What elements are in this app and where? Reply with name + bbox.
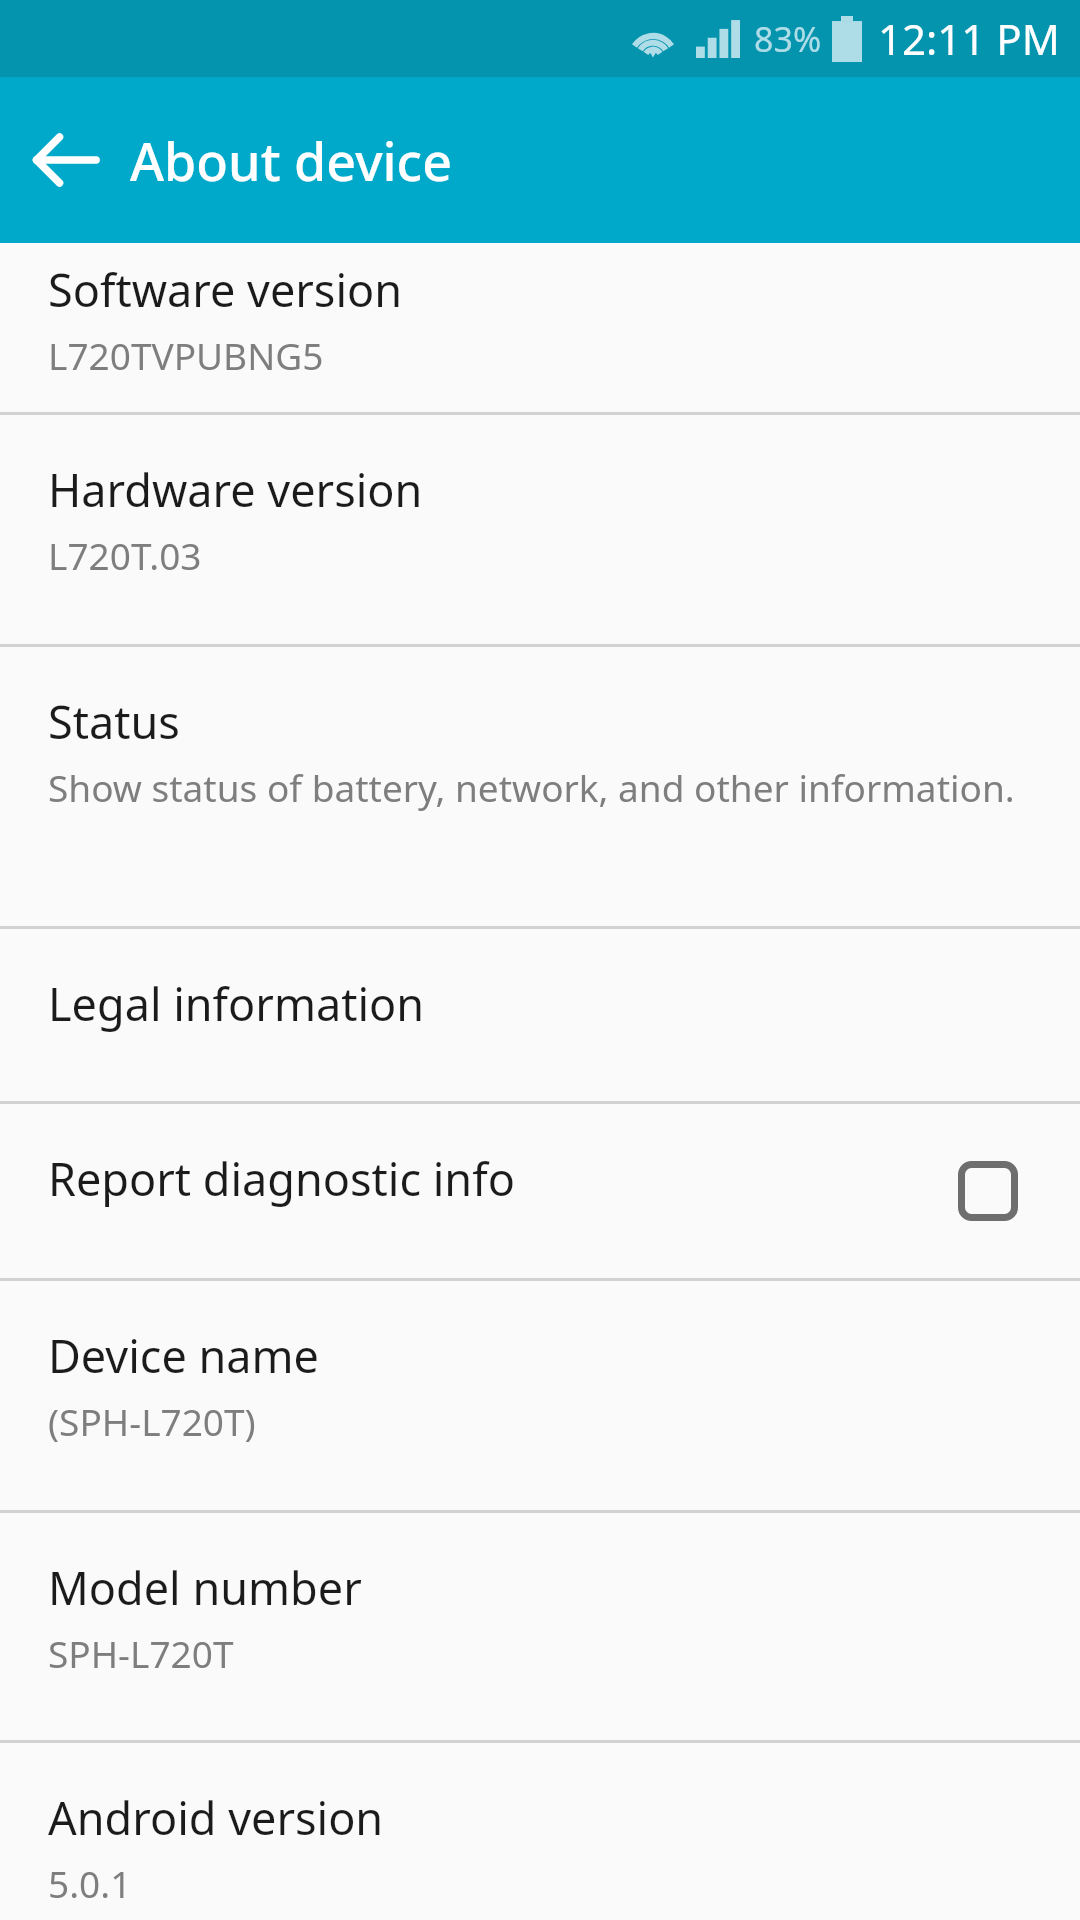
staticText: 5.0.1 [48,1858,132,1908]
staticText: SPH-L720T [48,1628,234,1678]
button[interactable]: Report diagnostic info checkbox [895,1104,1080,1278]
button[interactable]: Hardware version [0,415,1080,644]
button[interactable]: Report diagnostic info [0,1104,1080,1278]
button[interactable]: Device name [0,1281,1080,1510]
button[interactable]: Legal information [0,929,1080,1101]
staticText: Show status of battery, network, and oth… [48,762,1015,812]
staticText: Hardware version [48,459,423,520]
staticText: Status [48,691,180,752]
staticText: 83% [754,16,822,62]
staticText: Report diagnostic info [48,1148,515,1209]
staticText: 12:11 PM [878,10,1060,67]
staticText: About device [130,125,452,196]
staticText: Device name [48,1325,319,1386]
staticText: Model number [48,1557,362,1618]
button[interactable]: Android version [0,1743,1080,1920]
staticText: Android version [48,1787,384,1848]
staticText: (SPH-L720T) [48,1396,256,1446]
staticText: Software version [48,259,403,320]
button[interactable]: Navigate up [20,114,112,206]
staticText: L720T.03 [48,530,202,580]
staticText: Legal information [48,973,425,1034]
button[interactable]: Software version [0,243,1080,412]
button[interactable]: Status [0,647,1080,926]
staticText: L720TVPUBNG5 [48,330,324,380]
button[interactable]: Model number [0,1513,1080,1740]
